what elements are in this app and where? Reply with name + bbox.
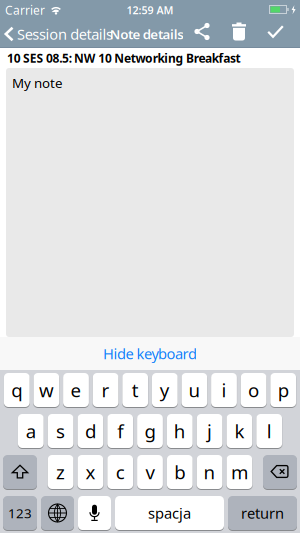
- staticText: p: [278, 378, 289, 402]
- staticText: 12:59 AM: [126, 3, 173, 17]
- staticText: z: [56, 460, 65, 484]
- staticText: Note details: [110, 25, 184, 43]
- staticText: o: [248, 378, 259, 402]
- staticText: y: [160, 378, 170, 402]
- staticText: d: [85, 419, 96, 443]
- staticText: v: [145, 460, 154, 484]
- button[interactable]: d: [77, 414, 103, 448]
- button[interactable]: n: [197, 455, 222, 489]
- button[interactable]: p: [270, 373, 296, 407]
- staticText: spacja: [148, 503, 191, 523]
- staticText: Carrier: [5, 2, 45, 18]
- button[interactable]: t: [122, 373, 148, 407]
- button[interactable]: r: [93, 373, 118, 407]
- staticText: Session details: [17, 24, 113, 44]
- button[interactable]: c: [107, 455, 133, 489]
- staticText: Hide keyboard: [103, 344, 197, 363]
- button[interactable]: m: [226, 455, 252, 489]
- staticText: u: [188, 378, 200, 402]
- button[interactable]: w: [33, 373, 59, 407]
- staticText: b: [174, 460, 185, 484]
- button[interactable]: i: [211, 373, 237, 407]
- staticText: f: [117, 419, 123, 443]
- staticText: My note: [12, 74, 63, 92]
- button[interactable]: Shift: [3, 455, 37, 489]
- button[interactable]: o: [241, 373, 266, 407]
- staticText: h: [174, 419, 186, 443]
- button[interactable]: Dictation: [78, 496, 111, 530]
- staticText: l: [267, 419, 272, 443]
- button[interactable]: k: [226, 414, 252, 448]
- staticText: return: [241, 503, 284, 523]
- staticText: g: [144, 419, 155, 443]
- button[interactable]: q: [4, 373, 30, 407]
- button[interactable]: h: [167, 414, 193, 448]
- button[interactable]: a: [18, 414, 44, 448]
- staticText: s: [56, 419, 65, 443]
- button[interactable]: Next keyboard: [41, 496, 74, 530]
- button[interactable]: b: [167, 455, 193, 489]
- button[interactable]: Save: [246, 25, 284, 38]
- button[interactable]: g: [137, 414, 163, 448]
- staticText: k: [234, 419, 244, 443]
- button[interactable]: z: [48, 455, 73, 489]
- button[interactable]: 123: [3, 496, 37, 530]
- button[interactable]: v: [137, 455, 163, 489]
- button[interactable]: f: [107, 414, 133, 448]
- staticText: n: [204, 460, 216, 484]
- button[interactable]: Session details: [0, 24, 113, 44]
- staticText: r: [102, 378, 110, 402]
- staticText: e: [70, 378, 81, 402]
- button[interactable]: l: [256, 414, 282, 448]
- staticText: i: [221, 378, 226, 402]
- staticText: 123: [8, 504, 32, 522]
- staticText: t: [132, 378, 139, 402]
- button[interactable]: Hide keyboard: [0, 337, 300, 370]
- button[interactable]: Share: [194, 23, 210, 40]
- staticText: c: [116, 460, 125, 484]
- button[interactable]: e: [63, 373, 89, 407]
- button[interactable]: j: [197, 414, 222, 448]
- button[interactable]: x: [77, 455, 103, 489]
- button[interactable]: Delete: [210, 22, 246, 40]
- staticText: q: [11, 378, 22, 402]
- button[interactable]: spacja: [115, 496, 224, 530]
- staticText: w: [39, 378, 54, 402]
- staticText: x: [85, 460, 95, 484]
- button[interactable]: y: [152, 373, 178, 407]
- button[interactable]: s: [48, 414, 73, 448]
- button[interactable]: return: [228, 496, 297, 530]
- button[interactable]: u: [181, 373, 207, 407]
- staticText: m: [231, 460, 248, 484]
- staticText: j: [207, 419, 212, 443]
- button[interactable]: Delete: [263, 455, 297, 489]
- staticText: a: [26, 419, 36, 443]
- staticText: 10 SES 08.5: NW 10 Networking Breakfast: [7, 50, 241, 66]
